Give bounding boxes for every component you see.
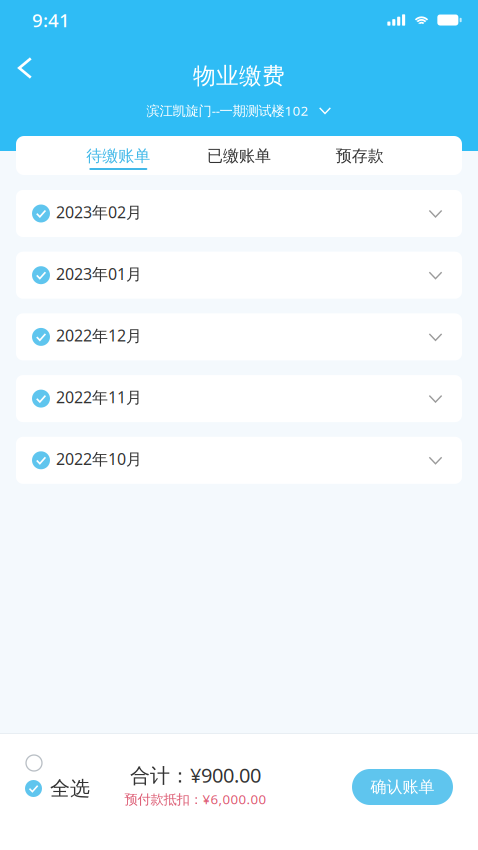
staticText: 2023年02月 (56, 201, 142, 223)
staticText: 全选 (50, 776, 90, 801)
staticText: 2022年10月 (56, 448, 142, 469)
staticText: 2022年11月 (56, 386, 142, 408)
staticText: 待缴账单 (86, 146, 150, 166)
button[interactable]: 预存款 (299, 136, 420, 175)
button[interactable]: 待缴账单 (58, 136, 179, 175)
staticText: 2023年01月 (56, 263, 142, 284)
button[interactable]: 确认账单 (352, 769, 453, 805)
button[interactable]: Back (0, 40, 53, 94)
staticText: 预存款 (336, 146, 384, 166)
button[interactable]: 2022年10月 (16, 437, 462, 484)
button[interactable]: 2022年12月 (16, 313, 462, 360)
staticText: 确认账单 (370, 777, 434, 797)
staticText: 9:41 (32, 8, 70, 32)
button[interactable]: 2023年01月 (16, 252, 462, 299)
button[interactable]: 滨江凯旋门--一期测试楼102 (146, 102, 331, 119)
staticText: 预付款抵扣：¥6,000.00 (124, 790, 266, 808)
button[interactable]: 全选 (0, 733, 104, 850)
button[interactable]: 已缴账单 (179, 136, 299, 175)
button[interactable]: 2022年11月 (16, 375, 462, 422)
staticText: 滨江凯旋门--一期测试楼102 (146, 102, 308, 119)
staticText: 已缴账单 (207, 146, 271, 166)
staticText: 物业缴费 (193, 62, 285, 90)
staticText: 2022年12月 (56, 325, 142, 346)
staticText: 合计：¥900.00 (130, 762, 261, 788)
button[interactable]: 2023年02月 (16, 190, 462, 237)
